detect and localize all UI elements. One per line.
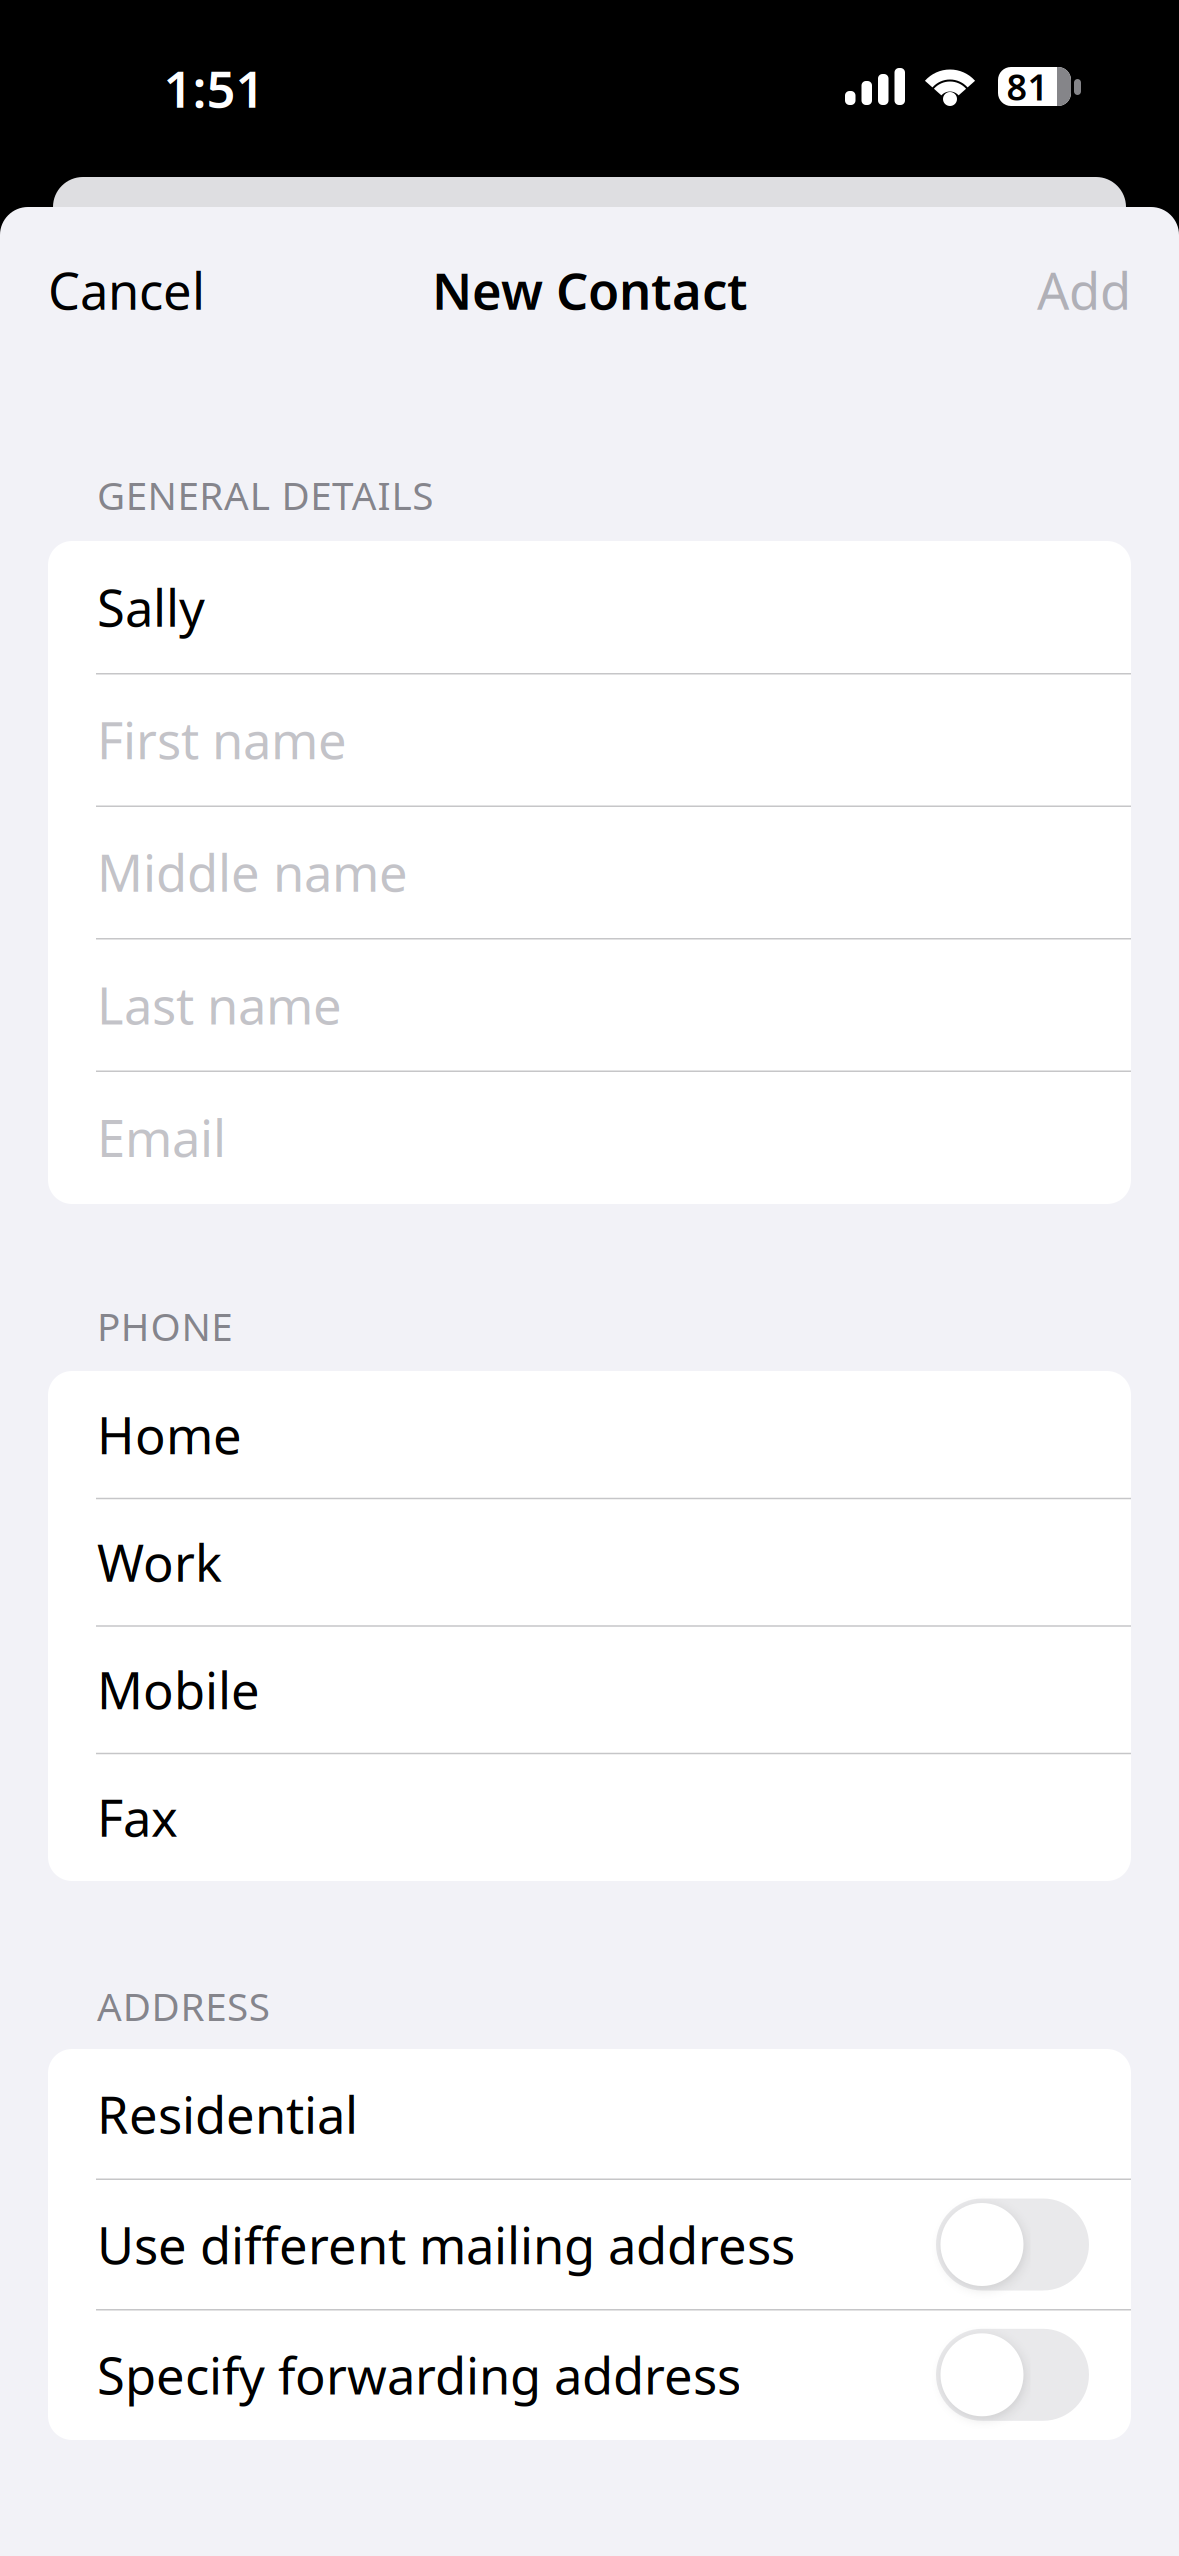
button[interactable]: Home (97, 1371, 1132, 1498)
staticText: First name (97, 706, 347, 773)
staticText: Specify forwarding address (97, 2341, 741, 2408)
staticText: 1:51 (163, 54, 264, 122)
staticText: Middle name (97, 839, 408, 906)
staticText: PHONE (97, 1300, 232, 1352)
button[interactable]: Use different mailing address (936, 2198, 1089, 2290)
staticText: Add (1037, 256, 1131, 324)
staticText: Cancel (48, 256, 205, 324)
staticText: Residential (97, 2080, 358, 2148)
button[interactable]: First name (97, 674, 1132, 806)
button[interactable]: Add (831, 258, 1131, 322)
button[interactable]: Sally (97, 541, 1132, 673)
button[interactable]: Work (97, 1498, 1132, 1625)
button[interactable]: Fax (97, 1753, 1132, 1880)
button[interactable]: Middle name (97, 806, 1132, 938)
button[interactable]: Specify forwarding address (936, 2329, 1089, 2421)
staticText: New Contact (432, 256, 748, 324)
button[interactable]: Mobile (97, 1626, 1132, 1753)
staticText: GENERAL DETAILS (97, 469, 433, 521)
button[interactable]: Residential (97, 2049, 1132, 2179)
staticText: Home (97, 1401, 242, 1468)
button[interactable]: Cancel (48, 258, 348, 322)
staticText: Use different mailing address (97, 2211, 795, 2278)
staticText: Mobile (97, 1656, 260, 1723)
staticText: Last name (97, 971, 342, 1038)
staticText: Email (97, 1104, 226, 1171)
staticText: Fax (97, 1783, 178, 1851)
staticText: 81 (1006, 63, 1048, 110)
staticText: Sally (97, 573, 205, 641)
button[interactable]: Last name (97, 939, 1132, 1071)
button[interactable]: Email (97, 1071, 1132, 1203)
staticText: ADDRESS (97, 1980, 270, 2032)
staticText: Work (97, 1528, 222, 1596)
